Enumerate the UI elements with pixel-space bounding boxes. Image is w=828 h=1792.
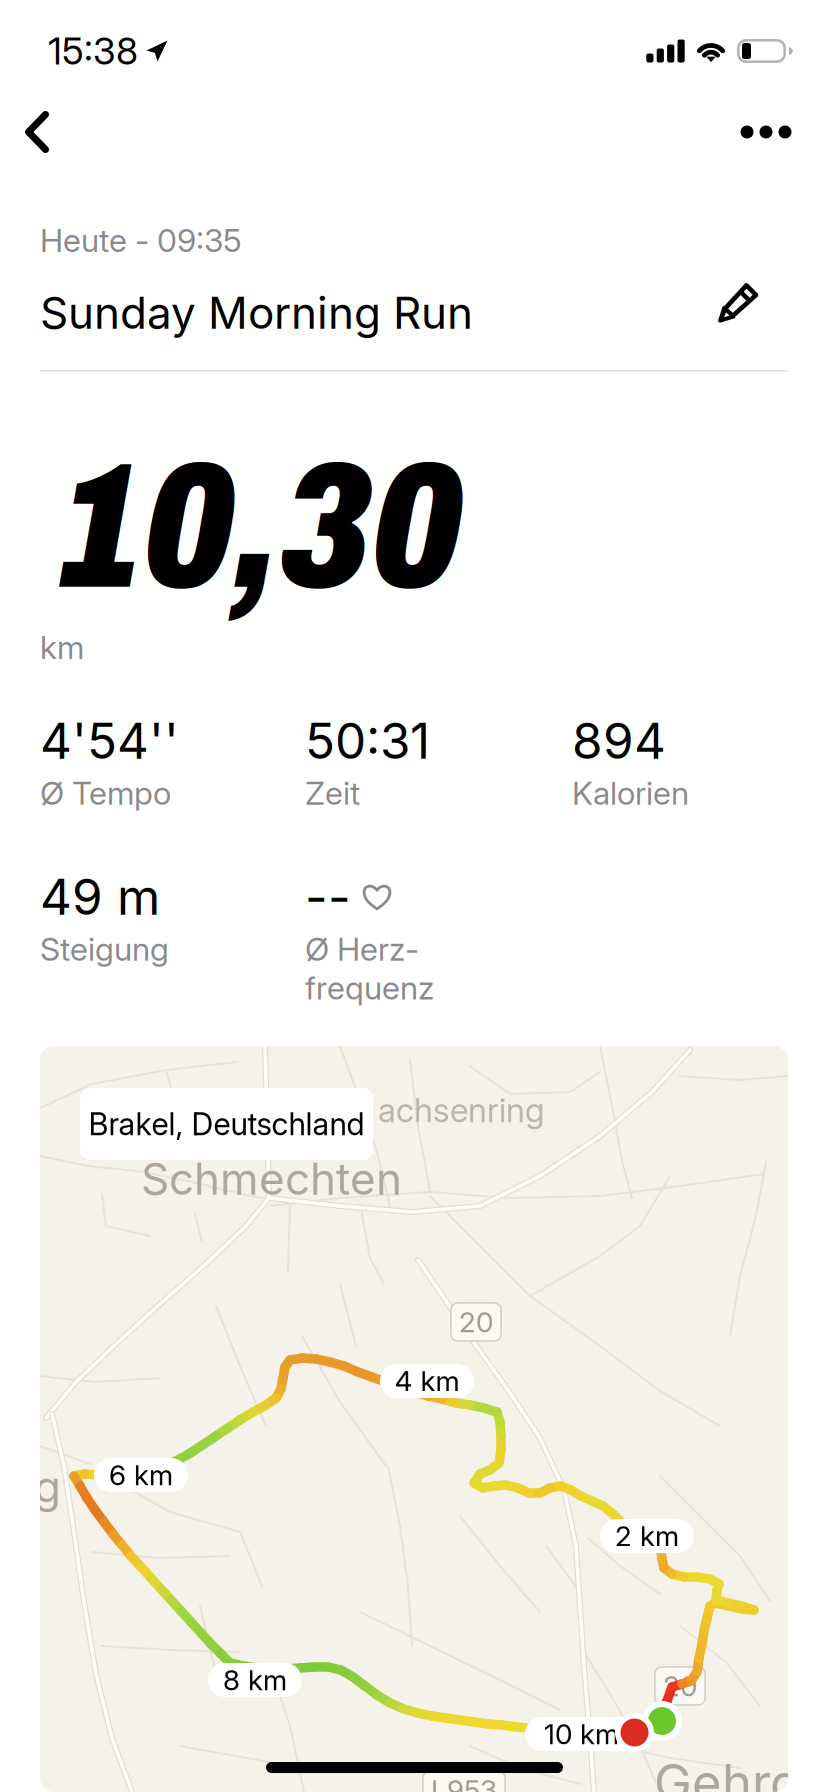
staticText: Sunday Morning Run (40, 286, 473, 339)
staticText: -- (305, 867, 351, 927)
staticText: 4'54'' (40, 711, 179, 771)
staticText: Brakel, Deutschland (88, 1105, 364, 1142)
staticText: 15:38 (48, 28, 138, 74)
staticText: Kalorien (572, 774, 689, 812)
staticText: 894 (572, 711, 666, 771)
staticText: g (34, 1460, 61, 1513)
button[interactable]: Edit (718, 280, 760, 322)
staticText: Steigung (40, 930, 169, 968)
staticText: L953 (431, 1773, 497, 1792)
staticText: 6 km (109, 1458, 173, 1492)
staticText: 20 (663, 1669, 697, 1703)
staticText: achsenring (378, 1090, 544, 1130)
button[interactable]: More options (723, 92, 809, 172)
staticText: 2 km (615, 1519, 679, 1553)
staticText: 8 km (223, 1663, 287, 1697)
staticText: 50:31 (305, 711, 430, 771)
staticText: Zeit (305, 774, 360, 812)
staticText: 49 m (40, 867, 160, 927)
button[interactable]: Back (0, 92, 80, 172)
staticText: 10 km (544, 1717, 619, 1751)
staticText: 20 (459, 1305, 493, 1339)
staticText: Ø Tempo (40, 774, 171, 812)
staticText: km (40, 628, 84, 667)
staticText: 4 km (394, 1364, 459, 1398)
staticText: Heute - 09:35 (40, 221, 242, 260)
staticText: 10,30 (61, 431, 462, 624)
staticText: Gehrden (654, 1752, 828, 1792)
staticText: Ø Herz- frequenz (305, 930, 434, 1007)
staticText: Schmechten (141, 1152, 402, 1205)
